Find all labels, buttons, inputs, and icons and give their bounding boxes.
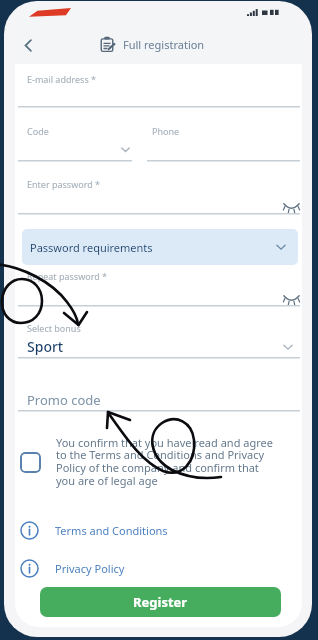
- staticText: Full registration: [123, 37, 205, 52]
- staticText: You confirm that you have read and agree…: [56, 435, 284, 488]
- staticText: Password requirements: [30, 240, 153, 255]
- staticText: Terms and Conditions: [55, 523, 168, 538]
- staticText: Privacy Policy: [55, 561, 125, 576]
- staticText: Code: [27, 125, 49, 137]
- button[interactable]: Register: [40, 587, 281, 617]
- staticText: Sport: [27, 337, 64, 356]
- button[interactable]: Terms and Conditions: [15, 514, 302, 546]
- staticText: Enter password *: [27, 178, 101, 190]
- staticText: Promo code: [27, 391, 101, 409]
- staticText: E-mail address *: [27, 73, 97, 85]
- staticText: Repeat password *: [27, 270, 108, 282]
- button[interactable]: Show password: [281, 288, 301, 308]
- staticText: Register: [133, 593, 188, 611]
- staticText: Select bonus: [27, 322, 81, 334]
- button[interactable]: Privacy Policy: [15, 552, 302, 584]
- button[interactable]: You confirm that you have read and agree…: [15, 428, 302, 500]
- staticText: Phone: [152, 125, 180, 137]
- button[interactable]: Password requirements: [22, 229, 298, 265]
- button[interactable]: Back: [15, 31, 42, 59]
- button[interactable]: Show password: [281, 196, 301, 216]
